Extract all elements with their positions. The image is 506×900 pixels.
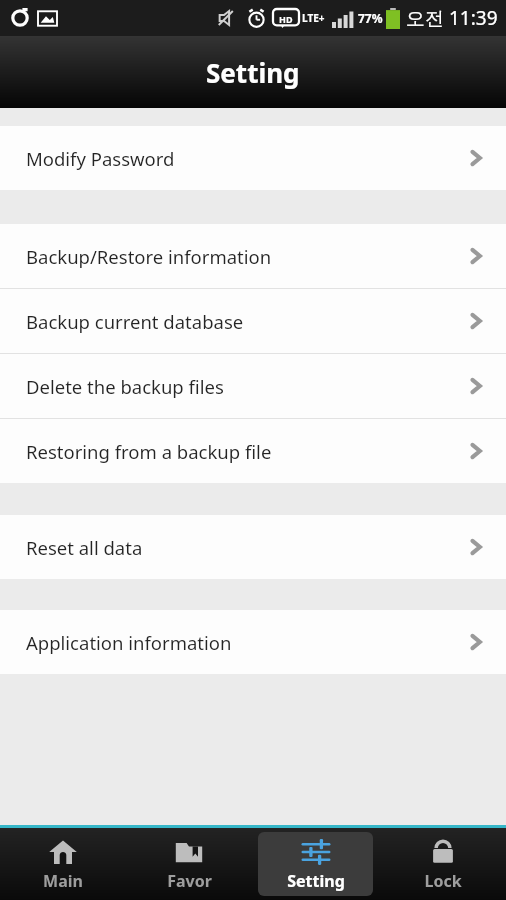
button[interactable]: Lock [385, 832, 500, 896]
staticText: Reset all data [26, 535, 143, 560]
button[interactable]: Application information [0, 610, 506, 674]
other: Setting [301, 837, 331, 867]
button[interactable]: Reset all data [0, 515, 506, 579]
staticText: Setting [287, 870, 345, 892]
staticText: Main [43, 870, 83, 892]
button[interactable]: Modify Password [0, 126, 506, 190]
staticText: Restoring from a backup file [26, 439, 272, 464]
other: Lock [428, 837, 458, 867]
staticText: 오전 11:39 [406, 5, 498, 31]
staticText: Application information [26, 630, 232, 655]
staticText: Backup current database [26, 309, 244, 334]
staticText: Backup/Restore information [26, 244, 272, 269]
staticText: Delete the backup files [26, 374, 224, 399]
staticText: 77% [358, 10, 383, 26]
button[interactable]: Delete the backup files [0, 354, 506, 418]
button[interactable]: Favor [132, 832, 246, 896]
button[interactable]: Main [6, 832, 120, 896]
button[interactable]: Backup current database [0, 289, 506, 353]
staticText: Setting [206, 55, 300, 90]
other: Main [48, 837, 78, 867]
button[interactable]: Restoring from a backup file [0, 419, 506, 483]
staticText: Lock [424, 870, 462, 892]
staticText: LTE+ [302, 11, 325, 25]
other: Favor [174, 837, 204, 867]
staticText: HD [279, 13, 293, 25]
staticText: Favor [167, 870, 212, 892]
button[interactable]: Setting [258, 832, 373, 896]
staticText: Modify Password [26, 146, 175, 171]
button[interactable]: Backup/Restore information [0, 224, 506, 288]
